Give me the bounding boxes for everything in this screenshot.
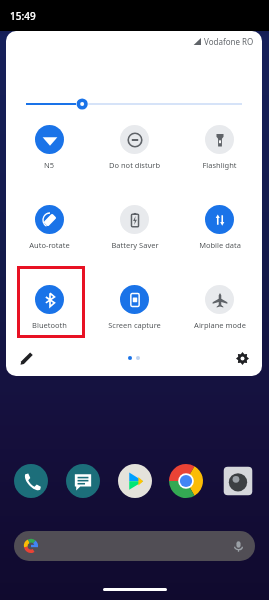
button[interactable]: Bluetooth [6,284,92,346]
staticText: Airplane mode [194,320,246,330]
staticText: Battery Saver [111,240,159,250]
button[interactable]: Battery Saver [92,204,177,266]
staticText: 15:49 [10,9,36,23]
staticText: Mobile data [199,240,241,250]
button[interactable]: Screen capture [92,284,177,346]
button[interactable]: Phone [14,464,48,498]
button[interactable]: Messages [66,464,100,498]
button[interactable]: Auto-rotate [6,204,92,266]
button[interactable]: Camera [221,464,255,498]
button[interactable]: Flashlight [177,124,262,186]
staticText: N5 [44,160,54,170]
staticText: Vodafone RO [204,36,254,47]
button[interactable]: Mobile data [177,204,262,266]
staticText: Auto-rotate [29,240,70,250]
staticText: Do not disturb [109,160,160,170]
button[interactable]: Edit tiles [14,346,38,370]
button[interactable]: Settings [230,346,254,370]
button[interactable]: Play Store [118,464,152,498]
button[interactable]: Chrome [169,464,203,498]
button[interactable]: Airplane mode [177,284,262,346]
button[interactable]: Google search [14,531,255,561]
staticText: Flashlight [202,160,237,170]
button[interactable]: Do not disturb [92,124,177,186]
button[interactable]: N5 [6,124,92,186]
staticText: Screen capture [108,320,161,330]
button[interactable]: Brightness [6,94,262,114]
staticText: Bluetooth [32,320,67,330]
